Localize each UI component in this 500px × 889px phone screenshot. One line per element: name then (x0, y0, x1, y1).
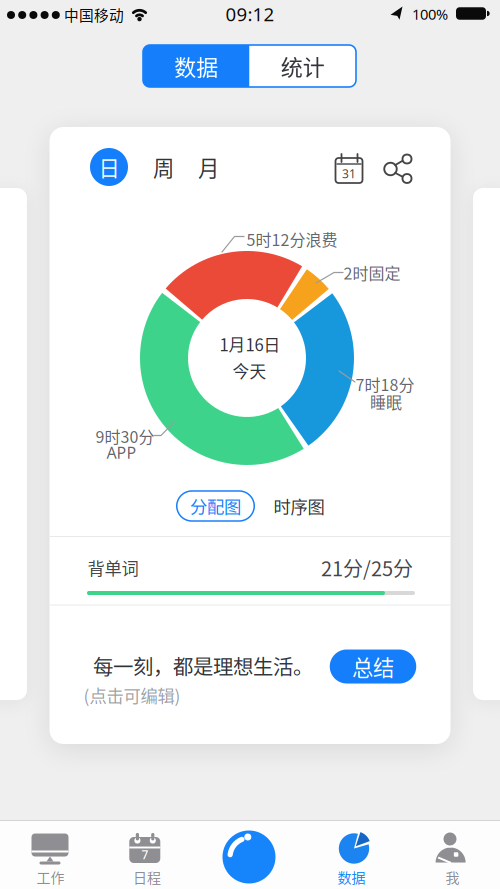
staticText: 总结 (352, 651, 394, 682)
staticText: 中国移动 (64, 4, 124, 25)
button[interactable]: 分配图 (177, 491, 254, 521)
staticText: 日 (98, 152, 119, 182)
staticText: 100% (412, 4, 448, 24)
staticText: (点击可编辑) (83, 682, 180, 708)
staticText: 1月16日 (219, 332, 280, 356)
staticText: 统计 (281, 50, 325, 82)
button[interactable]: 记录 (222, 830, 276, 884)
button[interactable]: 每一刻，都是理想生活。 (93, 651, 313, 680)
button[interactable]: 数据 (310, 821, 400, 887)
button[interactable]: 分享 (384, 154, 412, 184)
staticText: 数据 (174, 50, 218, 82)
staticText: APP (106, 442, 136, 463)
button[interactable]: 总结 (330, 649, 416, 683)
button[interactable]: 日 (90, 148, 128, 186)
staticText: 09:12 (225, 2, 274, 26)
button[interactable]: 时序图 (273, 493, 324, 519)
staticText: 月 (198, 152, 219, 182)
button[interactable]: 月 (198, 152, 219, 182)
staticText: 背单词 (87, 555, 138, 580)
button[interactable]: 数据 (143, 45, 249, 87)
staticText: 2时固定 (343, 261, 400, 284)
button[interactable]: 工作 (5, 821, 95, 887)
button[interactable]: 统计 (249, 45, 356, 87)
button[interactable]: 7 (100, 821, 190, 887)
staticText: 7时18分 (355, 372, 414, 396)
staticText: 9时30分 (95, 424, 154, 448)
staticText: 睡眠 (370, 390, 402, 413)
staticText: 21分/25分 (321, 553, 413, 582)
staticText: 7 (142, 846, 149, 862)
button[interactable]: 选择日期 (335, 152, 363, 184)
staticText: 日程 (133, 867, 161, 887)
button[interactable]: 我 (410, 821, 500, 887)
staticText: 今天 (232, 358, 266, 382)
staticText: 31 (342, 165, 356, 181)
staticText: 时序图 (273, 493, 324, 519)
staticText: 我 (445, 867, 459, 887)
staticText: 工作 (36, 867, 64, 887)
staticText: 每一刻，都是理想生活。 (93, 651, 313, 680)
staticText: 数据 (337, 867, 365, 887)
staticText: 分配图 (190, 493, 241, 519)
staticText: 周 (153, 152, 174, 182)
staticText: 5时12分浪费 (246, 227, 337, 251)
button[interactable]: 周 (153, 152, 174, 182)
